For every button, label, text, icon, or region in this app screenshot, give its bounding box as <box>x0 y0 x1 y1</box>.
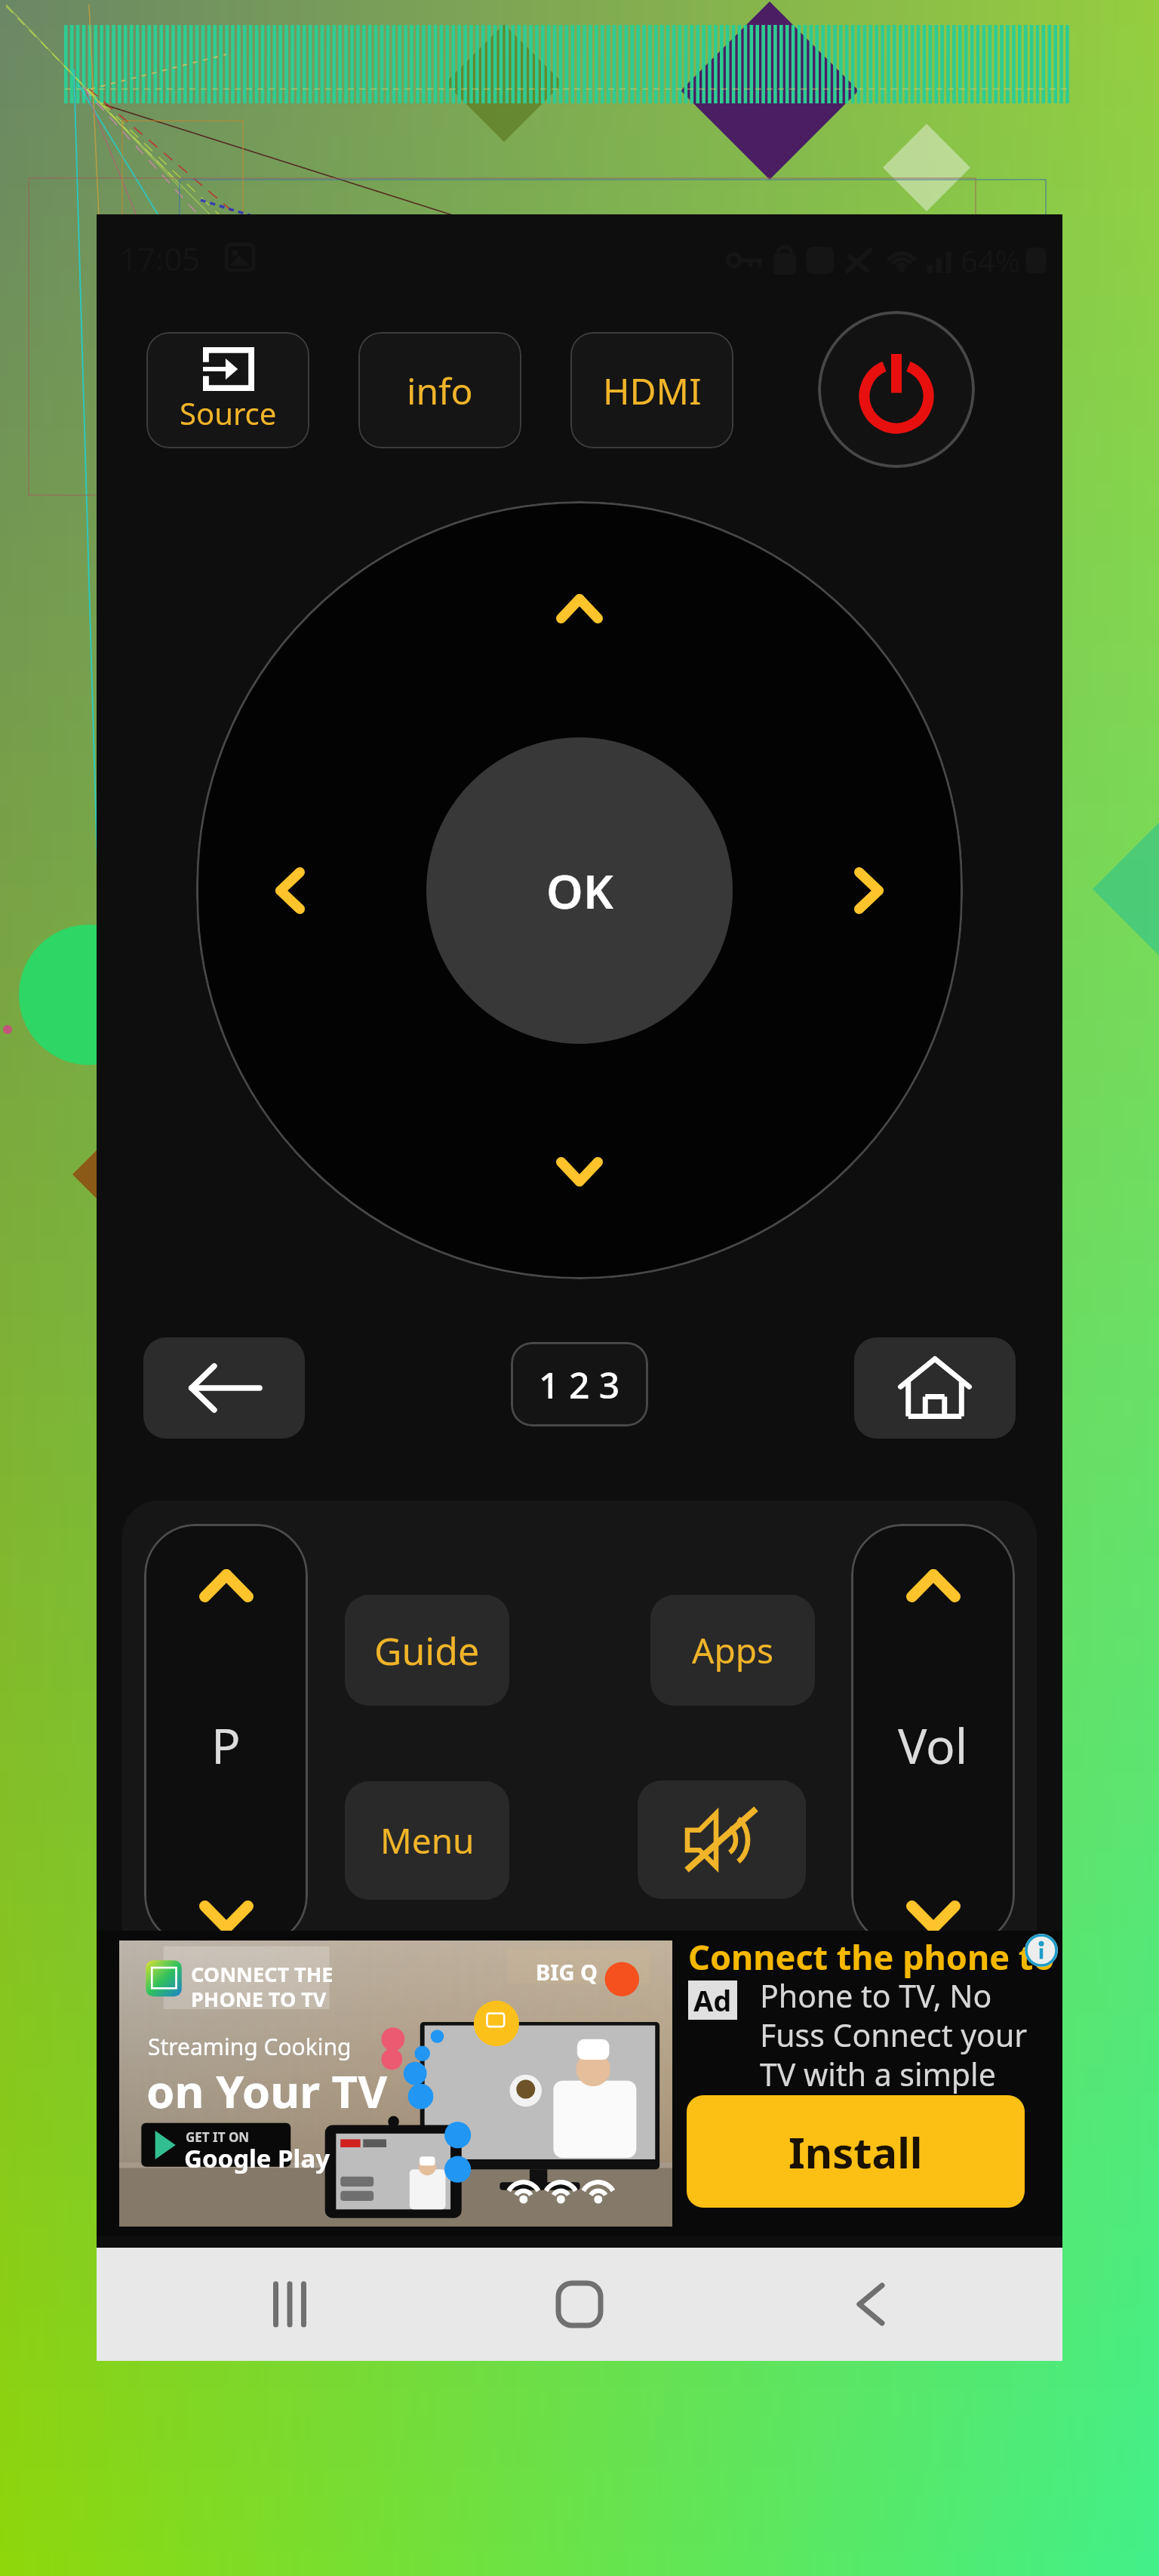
button[interactable]: Home <box>854 1337 1016 1439</box>
button[interactable]: Home <box>435 2248 724 2361</box>
staticText: Connect the phone to <box>688 1934 1055 1980</box>
staticText: HDMI <box>603 366 702 415</box>
staticText: P <box>211 1713 241 1778</box>
staticText: 1 2 3 <box>539 1360 620 1409</box>
staticText: Google Play <box>184 2141 330 2175</box>
staticText: Source <box>180 392 277 433</box>
staticText: Phone to TV, No Fuss Connect your TV wit… <box>760 1974 1028 2095</box>
button[interactable]: Menu <box>345 1781 509 1900</box>
staticText: GET IT ON <box>186 2128 250 2146</box>
staticText: Apps <box>692 1627 774 1674</box>
button[interactable]: Apps <box>650 1595 815 1706</box>
button[interactable]: Source <box>146 332 309 448</box>
button[interactable]: Mute <box>638 1780 806 1899</box>
button[interactable]: 1 2 3 <box>511 1342 648 1426</box>
button[interactable]: Recents <box>145 2248 435 2361</box>
button[interactable]: Install <box>687 2095 1025 2208</box>
button[interactable]: Back <box>143 1337 305 1439</box>
staticText: Ad <box>693 1980 732 2020</box>
staticText: info <box>407 366 473 415</box>
staticText: CONNECT THE PHONE TO TV <box>191 1960 334 2013</box>
button[interactable]: Back <box>724 2248 1014 2361</box>
staticText: on Your TV <box>146 2060 388 2122</box>
button[interactable]: Volume <box>851 1524 1015 1946</box>
staticText: BIG Q <box>536 1957 598 1987</box>
staticText: Install <box>789 2123 923 2181</box>
staticText: Menu <box>380 1817 475 1864</box>
button[interactable]: Power <box>818 311 975 468</box>
button[interactable]: OK <box>426 737 733 1044</box>
button[interactable]: Program <box>144 1524 308 1946</box>
button[interactable]: HDMI <box>570 332 733 448</box>
button[interactable]: info <box>358 332 521 448</box>
button[interactable]: Direction pad <box>196 501 963 1279</box>
staticText: Guide <box>374 1625 480 1676</box>
staticText: Streaming Cooking <box>148 2031 352 2062</box>
staticText: OK <box>546 859 613 922</box>
staticText: Vol <box>898 1713 968 1778</box>
button[interactable]: Guide <box>345 1595 509 1706</box>
button[interactable]: Ad info <box>1025 1934 1058 1967</box>
